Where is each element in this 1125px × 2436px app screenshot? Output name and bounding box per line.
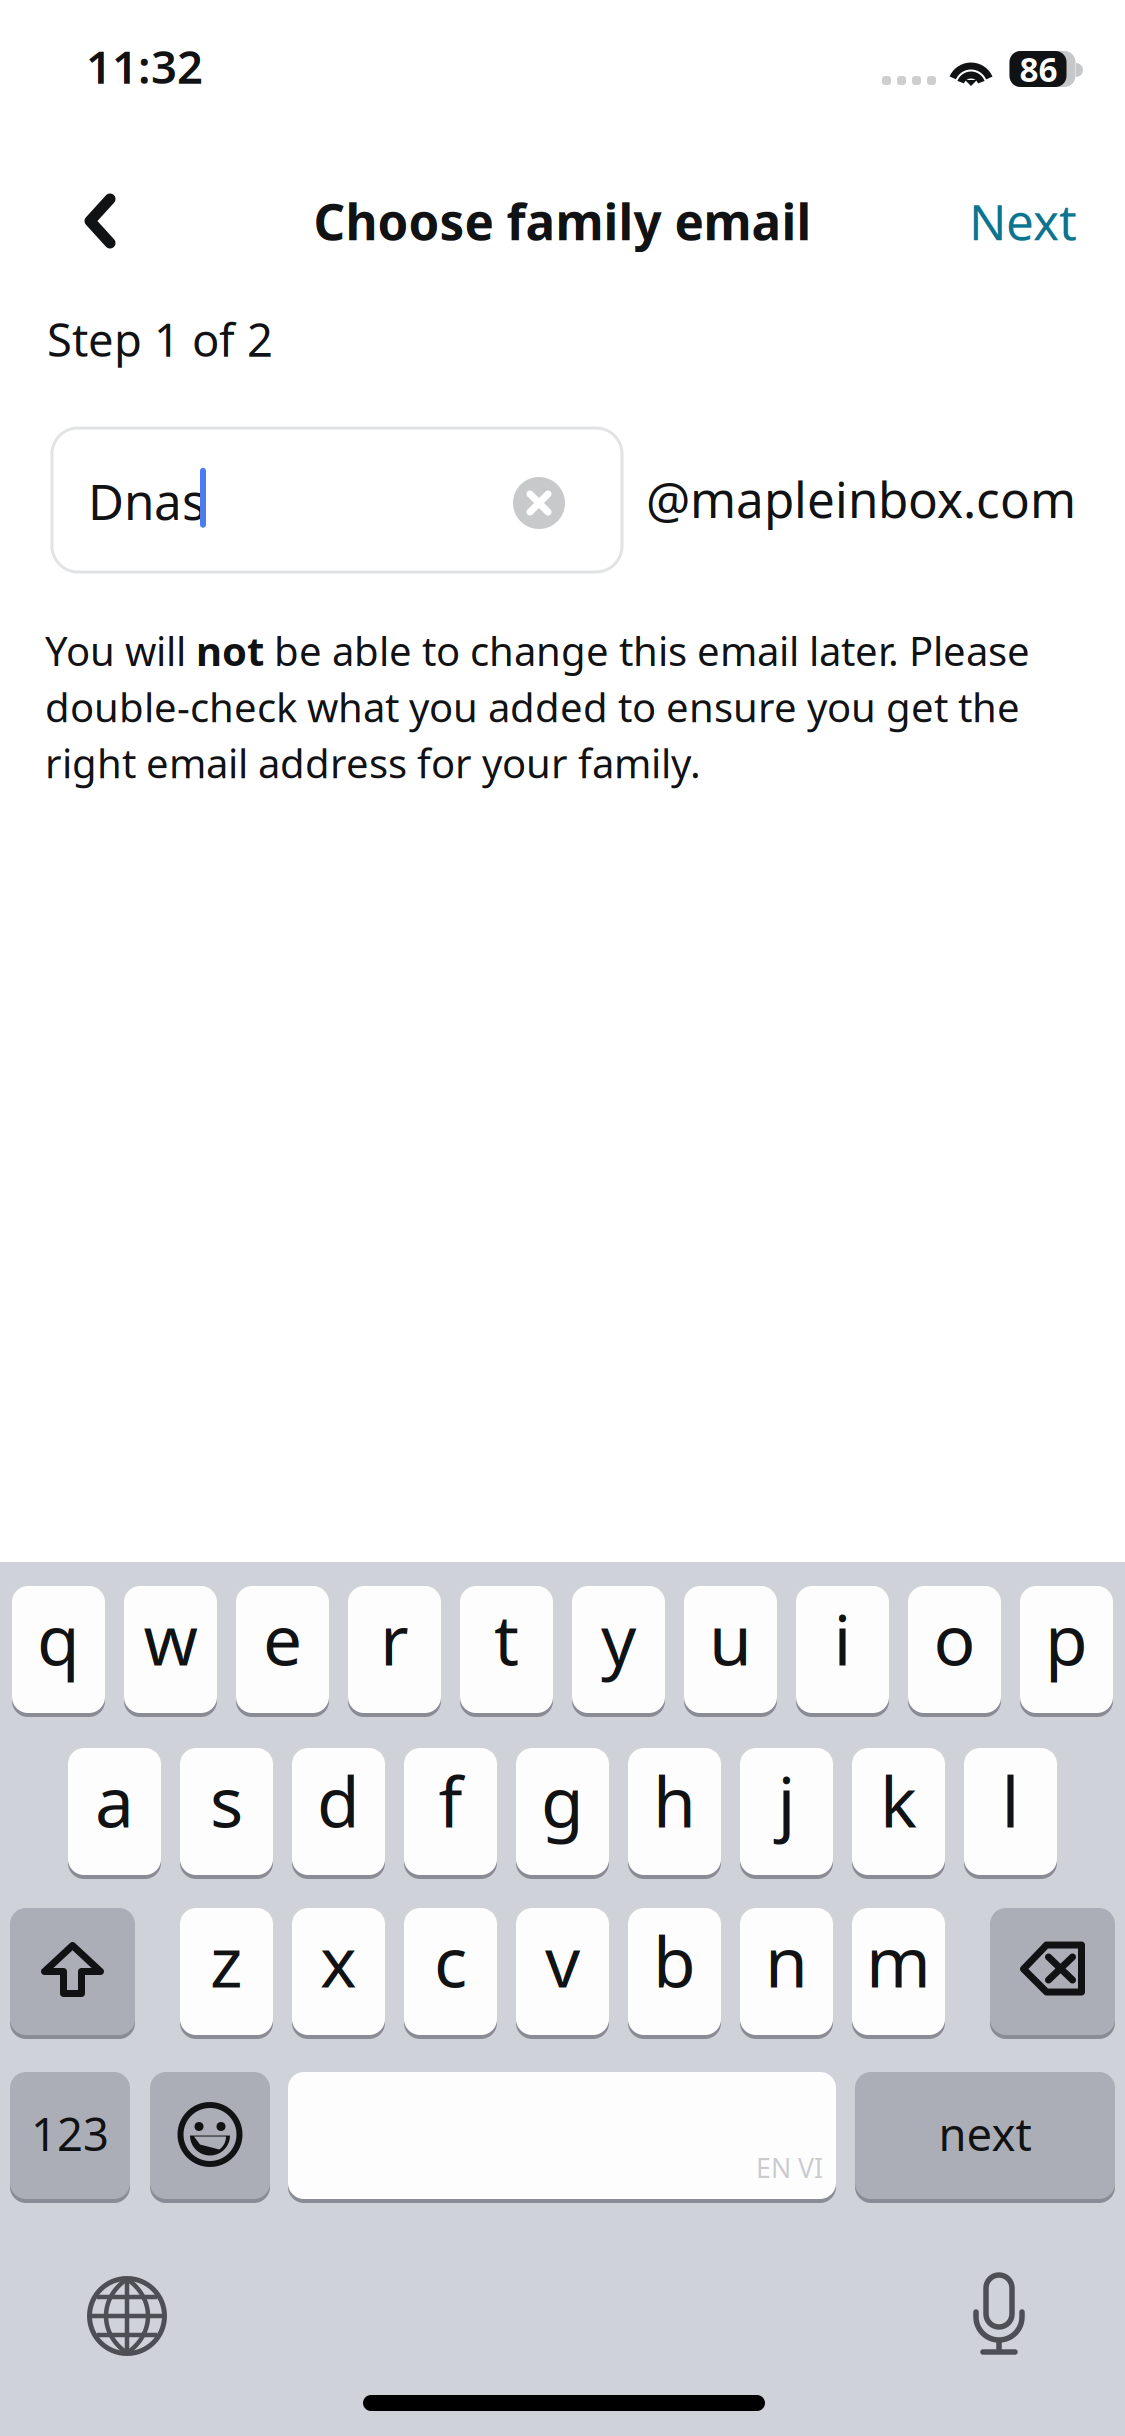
button[interactable]: j [740, 1744, 833, 1879]
staticText: c [434, 1914, 467, 2007]
staticText: z [210, 1914, 243, 2007]
button[interactable]: Clear text [497, 461, 581, 545]
button[interactable]: next [855, 2068, 1115, 2203]
button[interactable]: Next keyboard [87, 2276, 167, 2356]
button[interactable]: q [12, 1582, 105, 1717]
button[interactable]: Back [46, 169, 150, 273]
staticText: b [653, 1914, 696, 2007]
button[interactable]: b [628, 1904, 721, 2039]
staticText: v [545, 1914, 580, 2007]
button[interactable]: c [404, 1904, 497, 2039]
button[interactable]: f [404, 1744, 497, 1879]
staticText: n [765, 1914, 808, 2007]
staticText: d [317, 1754, 360, 1847]
button[interactable]: u [684, 1582, 777, 1717]
button[interactable]: y [572, 1582, 665, 1717]
staticText: Step 1 of 2 [47, 309, 273, 369]
staticText: 123 [31, 2103, 109, 2164]
button[interactable]: v [516, 1904, 609, 2039]
button[interactable]: r [348, 1582, 441, 1717]
staticText: t [494, 1592, 519, 1685]
button[interactable]: d [292, 1744, 385, 1879]
button[interactable]: z [180, 1904, 273, 2039]
staticText: s [210, 1754, 243, 1847]
staticText: u [709, 1592, 752, 1685]
button[interactable]: g [516, 1744, 609, 1879]
staticText: Choose family email [313, 188, 811, 254]
staticText: r [380, 1592, 409, 1685]
staticText: Next [969, 188, 1077, 254]
button[interactable]: x [292, 1904, 385, 2039]
button[interactable]: 123 [10, 2068, 130, 2203]
button[interactable]: Space [288, 2068, 836, 2203]
button[interactable]: Next [953, 169, 1093, 273]
staticText: h [653, 1754, 696, 1847]
staticText: Dnas [88, 468, 206, 533]
staticText: You will not be able to change this emai… [45, 624, 1030, 789]
staticText: EN VI [756, 2150, 823, 2185]
button[interactable]: l [964, 1744, 1057, 1879]
button[interactable]: i [796, 1582, 889, 1717]
button[interactable]: s [180, 1744, 273, 1879]
staticText: f [438, 1754, 462, 1847]
button[interactable]: n [740, 1904, 833, 2039]
button[interactable]: o [908, 1582, 1001, 1717]
staticText: k [880, 1754, 917, 1847]
button[interactable]: w [124, 1582, 217, 1717]
staticText: e [263, 1592, 302, 1685]
staticText: @mapleinbox.com [646, 466, 1076, 531]
staticText: p [1045, 1592, 1088, 1685]
staticText: l [1001, 1754, 1019, 1847]
staticText: 86 [1019, 47, 1057, 91]
staticText: 11:32 [86, 36, 203, 96]
staticText: x [320, 1914, 357, 2007]
staticText: j [777, 1754, 795, 1847]
staticText: q [37, 1592, 80, 1685]
staticText: g [541, 1754, 584, 1847]
staticText: a [95, 1754, 134, 1847]
button[interactable]: t [460, 1582, 553, 1717]
staticText: o [933, 1592, 975, 1685]
button[interactable]: Dictate [971, 2270, 1027, 2356]
staticText: i [833, 1592, 851, 1685]
button[interactable]: m [852, 1904, 945, 2039]
staticText: w [143, 1592, 197, 1685]
button[interactable]: p [1020, 1582, 1113, 1717]
staticText: m [866, 1914, 931, 2007]
button[interactable]: Delete [990, 1904, 1115, 2039]
staticText: next [938, 2103, 1031, 2164]
button[interactable]: Emoji [150, 2068, 270, 2203]
button[interactable]: h [628, 1744, 721, 1879]
button[interactable]: k [852, 1744, 945, 1879]
staticText: y [601, 1592, 636, 1685]
button[interactable]: a [68, 1744, 161, 1879]
button[interactable]: Shift [10, 1904, 135, 2039]
button[interactable]: e [236, 1582, 329, 1717]
